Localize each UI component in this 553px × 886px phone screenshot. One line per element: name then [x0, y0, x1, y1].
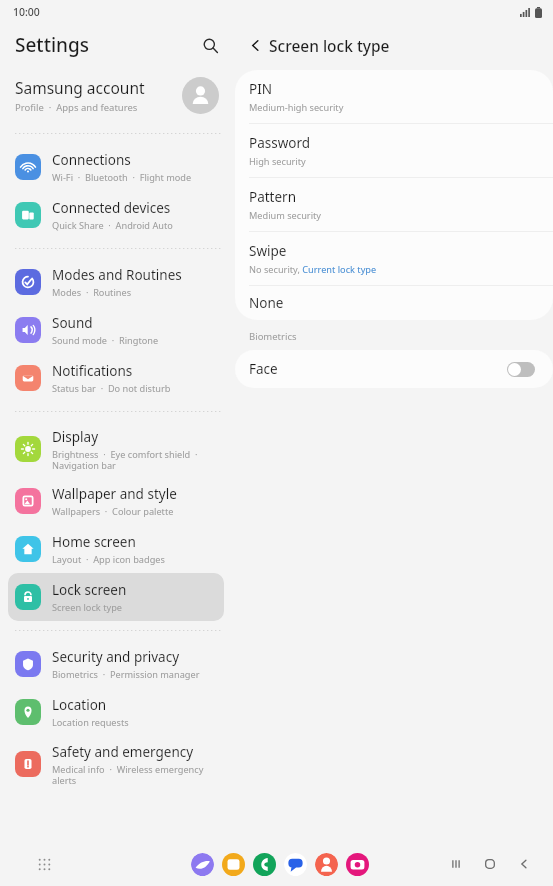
- button[interactable]: Safety and emergency: [8, 736, 224, 792]
- button[interactable]: Lock screen: [8, 573, 224, 621]
- staticText: Connected devices: [52, 199, 171, 217]
- button[interactable]: Home screen: [8, 525, 224, 573]
- staticText: Sound: [52, 314, 93, 332]
- staticText: Lock screen: [52, 581, 127, 599]
- button[interactable]: Connections: [8, 143, 224, 191]
- staticText: Sound mode · Ringtone: [52, 334, 159, 347]
- button[interactable]: Wallpaper and style: [8, 477, 224, 525]
- staticText: PIN: [249, 80, 273, 98]
- staticText: Connections: [52, 151, 131, 169]
- staticText: Modes and Routines: [52, 266, 182, 284]
- button[interactable]: Messages: [284, 853, 307, 876]
- staticText: Samsung account: [15, 77, 145, 98]
- button[interactable]: Face unlock, off: [507, 362, 535, 377]
- button[interactable]: Search settings: [192, 27, 228, 63]
- staticText: None: [249, 294, 284, 312]
- staticText: 10:00: [13, 5, 40, 19]
- staticText: Password: [249, 134, 311, 152]
- staticText: Location: [52, 696, 107, 714]
- staticText: High security: [249, 155, 306, 168]
- staticText: Display: [52, 428, 99, 446]
- staticText: Swipe: [249, 242, 287, 260]
- button[interactable]: Apps list: [30, 850, 58, 878]
- button[interactable]: Contacts: [315, 853, 338, 876]
- button[interactable]: Password: [235, 124, 553, 177]
- button[interactable]: Pattern: [235, 178, 553, 231]
- staticText: Safety and emergency: [52, 743, 194, 761]
- staticText: Brightness · Eye comfort shield · Naviga…: [52, 448, 198, 471]
- staticText: Wallpapers · Colour palette: [52, 505, 174, 518]
- button[interactable]: Phone: [253, 853, 276, 876]
- button[interactable]: My Files: [222, 853, 245, 876]
- button[interactable]: Home: [475, 849, 505, 879]
- staticText: Location requests: [52, 716, 129, 729]
- staticText: Quick Share · Android Auto: [52, 219, 173, 232]
- button[interactable]: Swipe: [235, 232, 553, 285]
- staticText: Layout · App icon badges: [52, 553, 165, 566]
- button[interactable]: Recent apps: [441, 849, 471, 879]
- button[interactable]: Notifications: [8, 354, 224, 402]
- staticText: Medium security: [249, 209, 322, 222]
- staticText: Medium-high security: [249, 101, 344, 114]
- staticText: Home screen: [52, 533, 136, 551]
- staticText: Wi-Fi · Bluetooth · Flight mode: [52, 171, 192, 184]
- staticText: Pattern: [249, 188, 297, 206]
- button[interactable]: Modes and Routines: [8, 258, 224, 306]
- button[interactable]: Samsung account: [0, 66, 232, 124]
- button[interactable]: Settings: [15, 32, 89, 58]
- button[interactable]: Location: [8, 688, 224, 736]
- button[interactable]: Navigate up: [241, 31, 269, 59]
- staticText: Wallpaper and style: [52, 485, 177, 503]
- staticText: Face: [249, 360, 278, 378]
- button[interactable]: Back: [509, 849, 539, 879]
- staticText: Security and privacy: [52, 648, 180, 666]
- button[interactable]: Connected devices: [8, 191, 224, 239]
- staticText: No security, Current lock type: [249, 263, 377, 276]
- staticText: Profile · Apps and features: [15, 101, 138, 114]
- button[interactable]: PIN: [235, 70, 553, 123]
- button[interactable]: Samsung Internet: [191, 853, 214, 876]
- staticText: Screen lock type: [269, 35, 390, 56]
- staticText: Modes · Routines: [52, 286, 132, 299]
- button[interactable]: Security and privacy: [8, 640, 224, 688]
- button[interactable]: Face: [235, 350, 553, 388]
- staticText: Screen lock type: [52, 601, 122, 614]
- staticText: Medical info · Wireless emergency alerts: [52, 763, 204, 786]
- button[interactable]: None: [235, 286, 553, 320]
- button[interactable]: Camera: [346, 853, 369, 876]
- staticText: Biometrics · Permission manager: [52, 668, 200, 681]
- button[interactable]: Display: [8, 421, 224, 477]
- staticText: Biometrics: [249, 330, 297, 343]
- button[interactable]: Sound: [8, 306, 224, 354]
- staticText: Notifications: [52, 362, 133, 380]
- staticText: Status bar · Do not disturb: [52, 382, 171, 395]
